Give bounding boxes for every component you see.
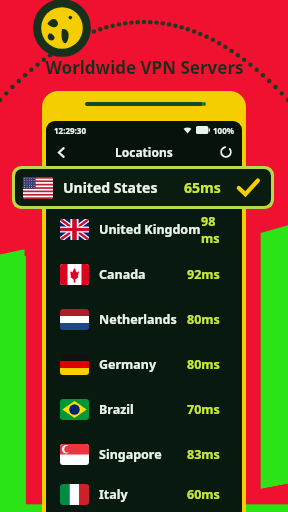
- staticText: United Kingdom: [99, 221, 201, 238]
- staticText: 65ms: [184, 178, 221, 197]
- staticText: Canada: [99, 266, 146, 283]
- button[interactable]: Back: [50, 141, 72, 163]
- staticText: Worldwide VPN Servers: [45, 56, 244, 79]
- staticText: Germany: [99, 356, 157, 373]
- staticText: United States: [63, 178, 158, 197]
- staticText: Locations: [115, 144, 173, 160]
- staticText: 60ms: [187, 486, 220, 503]
- button[interactable]: Canada: [46, 252, 242, 297]
- staticText: 80ms: [187, 356, 220, 373]
- button[interactable]: United States: [12, 166, 274, 209]
- staticText: 98ms: [201, 213, 220, 247]
- staticText: Singapore: [99, 446, 162, 463]
- button[interactable]: Brazil: [46, 387, 242, 432]
- button[interactable]: Germany: [46, 342, 242, 387]
- staticText: 70ms: [187, 401, 220, 418]
- staticText: 100%: [213, 125, 234, 136]
- staticText: Brazil: [99, 401, 134, 418]
- staticText: Italy: [99, 486, 128, 503]
- staticText: 92ms: [187, 266, 220, 283]
- staticText: 83ms: [187, 446, 220, 463]
- button[interactable]: United Kingdom: [46, 207, 242, 252]
- button[interactable]: Netherlands: [46, 297, 242, 342]
- button[interactable]: Italy: [46, 477, 242, 512]
- staticText: Netherlands: [99, 311, 177, 328]
- button[interactable]: Singapore: [46, 432, 242, 477]
- staticText: 80ms: [187, 311, 220, 328]
- button[interactable]: Refresh: [215, 141, 237, 163]
- staticText: 12:29:30: [54, 125, 86, 136]
